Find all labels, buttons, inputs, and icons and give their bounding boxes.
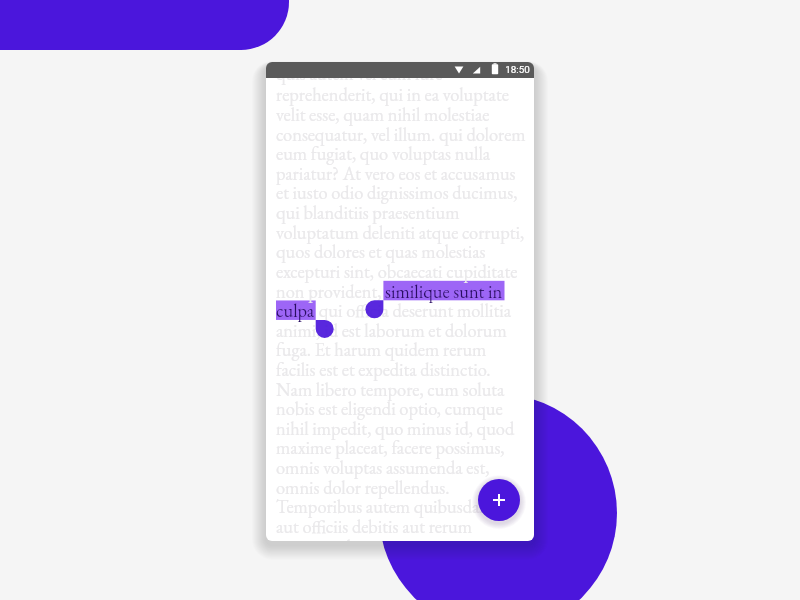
button[interactable]: Article text <box>266 62 534 541</box>
button[interactable]: Status bar <box>266 62 534 78</box>
button[interactable]: Selection start handle <box>373 300 391 318</box>
button[interactable]: Selection end handle <box>315 319 333 337</box>
button[interactable]: Add <box>478 479 520 521</box>
